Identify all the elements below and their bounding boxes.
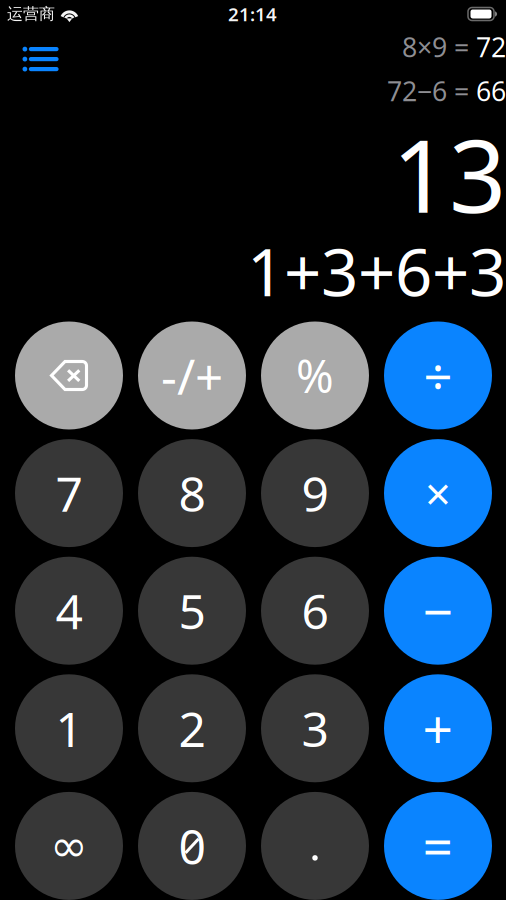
staticText: 8 xyxy=(178,461,205,525)
button[interactable]: % xyxy=(261,321,369,429)
staticText: + xyxy=(422,693,453,764)
staticText: 3 xyxy=(301,696,328,760)
button[interactable]: × xyxy=(384,439,492,547)
staticText: 2 xyxy=(178,696,205,760)
button[interactable]: 8 xyxy=(138,439,246,547)
staticText: 6 xyxy=(301,579,328,642)
button[interactable]: 9 xyxy=(261,439,369,547)
staticText: = xyxy=(422,810,453,881)
button[interactable]: − xyxy=(384,557,492,665)
staticText: ∞ xyxy=(50,820,88,872)
staticText: 21:14 xyxy=(228,2,277,26)
staticText: − xyxy=(422,575,453,646)
staticText: 72−6 = xyxy=(387,73,476,109)
button[interactable]: 6 xyxy=(261,557,369,665)
button[interactable]: 2 xyxy=(138,674,246,782)
button[interactable]: 3 xyxy=(261,674,369,782)
button[interactable]: Delete xyxy=(15,321,123,429)
staticText: % xyxy=(296,345,334,406)
staticText: 7 xyxy=(55,461,82,525)
button[interactable]: -/+ xyxy=(138,321,246,429)
staticText: -/+ xyxy=(161,343,223,408)
staticText: 1 xyxy=(55,696,82,760)
staticText: 0 xyxy=(178,814,205,878)
staticText: 4 xyxy=(55,579,82,642)
button[interactable]: 5 xyxy=(138,557,246,665)
staticText: 5 xyxy=(178,579,205,642)
button[interactable]: History xyxy=(6,33,76,85)
staticText: 9 xyxy=(301,461,328,525)
button[interactable]: = xyxy=(384,792,492,900)
staticText: 8×9 = xyxy=(402,29,476,65)
staticText: 72 xyxy=(476,29,506,65)
button[interactable]: + xyxy=(384,674,492,782)
button[interactable]: 7 xyxy=(15,439,123,547)
button[interactable]: 0 xyxy=(138,792,246,900)
staticText: × xyxy=(425,463,451,523)
staticText: ÷ xyxy=(423,342,452,409)
staticText: 运营商 xyxy=(7,4,55,24)
button[interactable]: ∞ xyxy=(15,792,123,900)
staticText: 13 xyxy=(392,108,506,240)
button[interactable]: 4 xyxy=(15,557,123,665)
button[interactable]: ÷ xyxy=(384,321,492,429)
staticText: 1+3+6+3 xyxy=(247,228,506,314)
button[interactable]: Decimal point xyxy=(261,792,369,900)
staticText: 66 xyxy=(476,73,506,109)
button[interactable]: 1 xyxy=(15,674,123,782)
